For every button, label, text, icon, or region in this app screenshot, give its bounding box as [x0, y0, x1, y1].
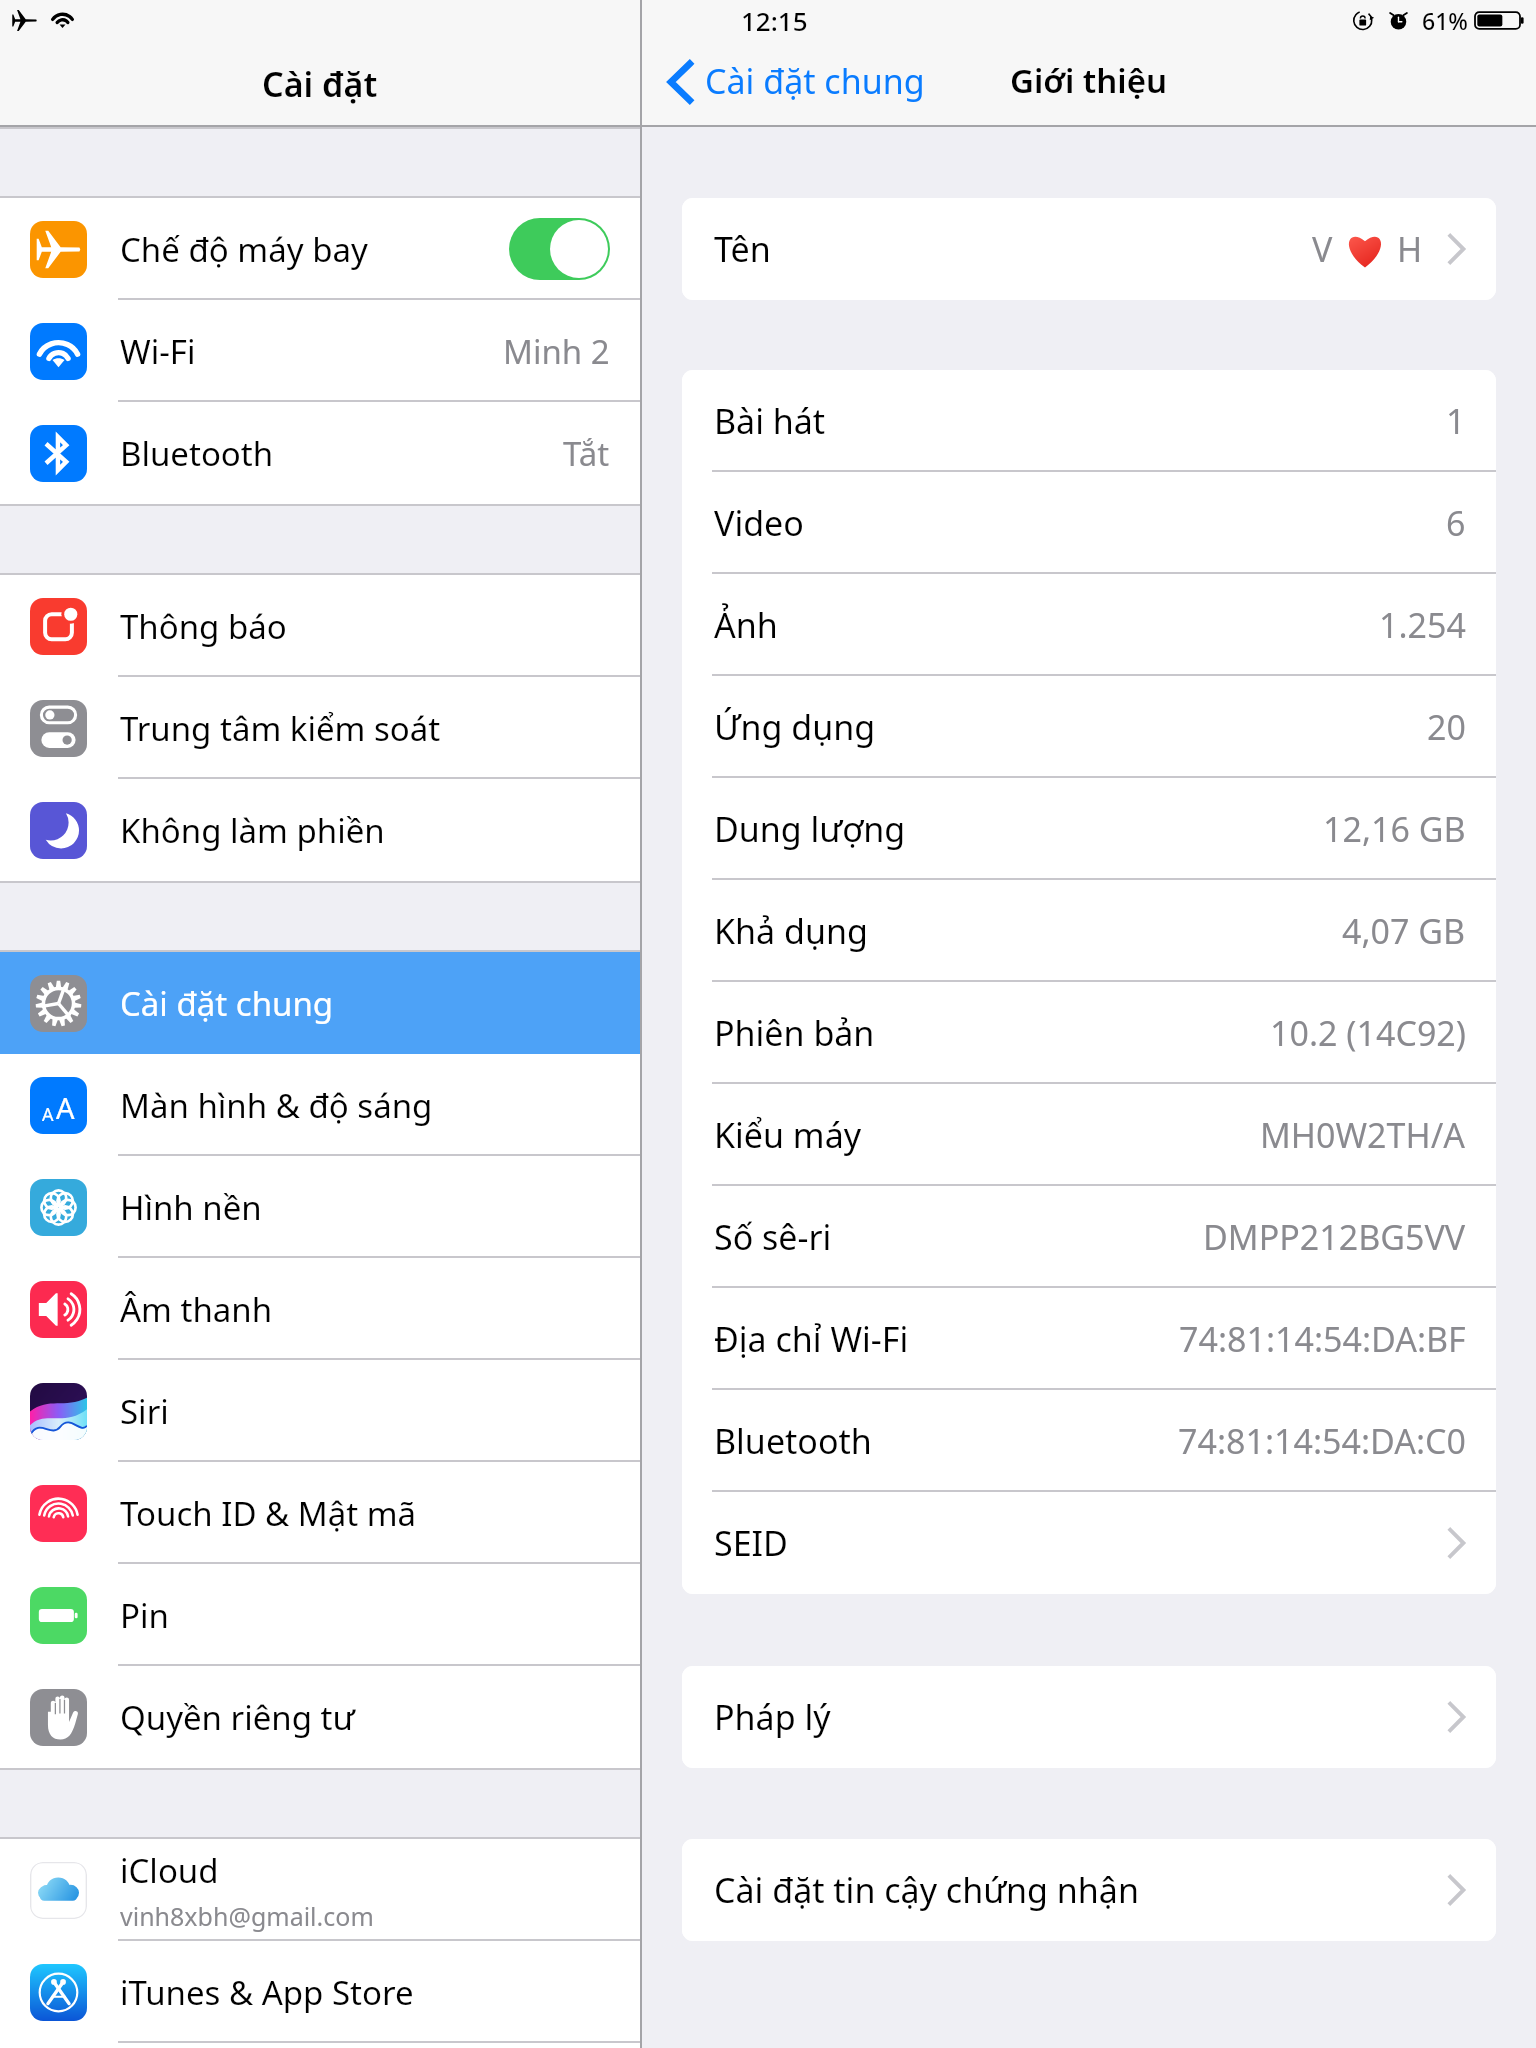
- staticText: Pin: [120, 1593, 169, 1638]
- staticText: Ảnh: [714, 602, 778, 648]
- button[interactable]: iTunes & App Store: [0, 1941, 640, 2043]
- button[interactable]: Cài đặt tin cậy chứng nhận: [682, 1839, 1496, 1941]
- staticText: Minh 2: [503, 329, 610, 374]
- staticText: MH0W2TH/A: [1260, 1112, 1466, 1158]
- button[interactable]: Trung tâm kiểm soát: [0, 677, 640, 779]
- staticText: Tên: [714, 226, 771, 272]
- button[interactable]: Tên: [682, 198, 1496, 300]
- button[interactable]: Âm thanh: [0, 1258, 640, 1360]
- staticText: 6: [1446, 500, 1466, 546]
- staticText: Dung lượng: [714, 806, 906, 852]
- staticText: Bài hát: [714, 398, 826, 444]
- button[interactable]: Khả dụng: [682, 880, 1496, 982]
- staticText: 74:81:14:54:DA:BF: [1179, 1316, 1466, 1362]
- staticText: Chế độ máy bay: [120, 227, 368, 272]
- staticText: 12,16 GB: [1323, 806, 1466, 852]
- staticText: Cài đặt chung: [705, 58, 925, 104]
- staticText: iCloud: [120, 1848, 219, 1893]
- staticText: Cài đặt: [262, 61, 378, 107]
- staticText: Hình nền: [120, 1185, 262, 1230]
- staticText: Ứng dụng: [714, 704, 876, 750]
- staticText: 1: [1446, 398, 1466, 444]
- button[interactable]: Bài hát: [682, 370, 1496, 472]
- button[interactable]: Chế độ máy bay: [0, 198, 640, 300]
- staticText: Không làm phiền: [120, 808, 385, 853]
- staticText: A: [56, 1088, 75, 1127]
- button[interactable]: Kiểu máy: [682, 1084, 1496, 1186]
- staticText: Trung tâm kiểm soát: [120, 706, 441, 751]
- staticText: Bluetooth: [714, 1418, 872, 1464]
- button[interactable]: Phiên bản: [682, 982, 1496, 1084]
- button[interactable]: Dung lượng: [682, 778, 1496, 880]
- staticText: 4,07 GB: [1342, 908, 1466, 954]
- staticText: Khả dụng: [714, 908, 868, 954]
- staticText: Quyền riêng tư: [120, 1695, 355, 1740]
- staticText: H: [1397, 226, 1423, 272]
- staticText: Video: [714, 500, 804, 546]
- staticText: Số sê-ri: [714, 1214, 832, 1260]
- staticText: Cài đặt tin cậy chứng nhận: [714, 1867, 1139, 1913]
- button[interactable]: Back to Cài đặt chung: [666, 58, 929, 106]
- staticText: iTunes & App Store: [120, 1970, 414, 2015]
- button[interactable]: Không làm phiền: [0, 779, 640, 881]
- staticText: Màn hình & độ sáng: [120, 1083, 433, 1128]
- staticText: Kiểu máy: [714, 1112, 862, 1158]
- staticText: DMPP212BG5VV: [1203, 1214, 1466, 1260]
- staticText: 12:15: [741, 3, 808, 38]
- button[interactable]: Hình nền: [0, 1156, 640, 1258]
- button[interactable]: Touch ID & Mật mã: [0, 1462, 640, 1564]
- staticText: V: [1312, 226, 1333, 272]
- button[interactable]: Siri: [0, 1360, 640, 1462]
- staticText: Giới thiệu: [1010, 58, 1168, 103]
- staticText: 61%: [1422, 5, 1468, 36]
- button[interactable]: Địa chỉ Wi-Fi: [682, 1288, 1496, 1390]
- staticText: Tắt: [563, 431, 610, 476]
- button[interactable]: Video: [682, 472, 1496, 574]
- staticText: Wi-Fi: [120, 329, 196, 374]
- staticText: 74:81:14:54:DA:C0: [1178, 1418, 1466, 1464]
- button[interactable]: Ứng dụng: [682, 676, 1496, 778]
- button[interactable]: Thông báo: [0, 575, 640, 677]
- button[interactable]: Bluetooth: [0, 402, 640, 504]
- staticText: A: [42, 1102, 54, 1127]
- staticText: Địa chỉ Wi-Fi: [714, 1316, 909, 1362]
- button[interactable]: Số sê-ri: [682, 1186, 1496, 1288]
- button[interactable]: Quyền riêng tư: [0, 1666, 640, 1768]
- staticText: Bluetooth: [120, 431, 274, 476]
- button[interactable]: Ảnh: [682, 574, 1496, 676]
- button[interactable]: iCloud: [0, 1839, 640, 1941]
- button[interactable]: Wi-Fi: [0, 300, 640, 402]
- staticText: 1.254: [1379, 602, 1466, 648]
- button[interactable]: A: [0, 1054, 640, 1156]
- staticText: Cài đặt chung: [120, 981, 334, 1026]
- button[interactable]: Cài đặt chung: [0, 952, 640, 1054]
- staticText: Thông báo: [120, 604, 287, 649]
- staticText: vinh8xbh@gmail.com: [120, 1899, 374, 1933]
- staticText: 10.2 (14C92): [1270, 1010, 1466, 1056]
- button[interactable]: Airplane mode toggle: [509, 218, 610, 280]
- staticText: Touch ID & Mật mã: [120, 1491, 417, 1536]
- staticText: Âm thanh: [120, 1287, 273, 1332]
- button[interactable]: Pháp lý: [682, 1666, 1496, 1768]
- staticText: 20: [1427, 704, 1466, 750]
- staticText: Siri: [120, 1389, 169, 1434]
- staticText: SEID: [714, 1520, 788, 1566]
- staticText: Pháp lý: [714, 1694, 831, 1740]
- staticText: Phiên bản: [714, 1010, 875, 1056]
- button[interactable]: Bluetooth: [682, 1390, 1496, 1492]
- button[interactable]: SEID: [682, 1492, 1496, 1594]
- button[interactable]: Pin: [0, 1564, 640, 1666]
